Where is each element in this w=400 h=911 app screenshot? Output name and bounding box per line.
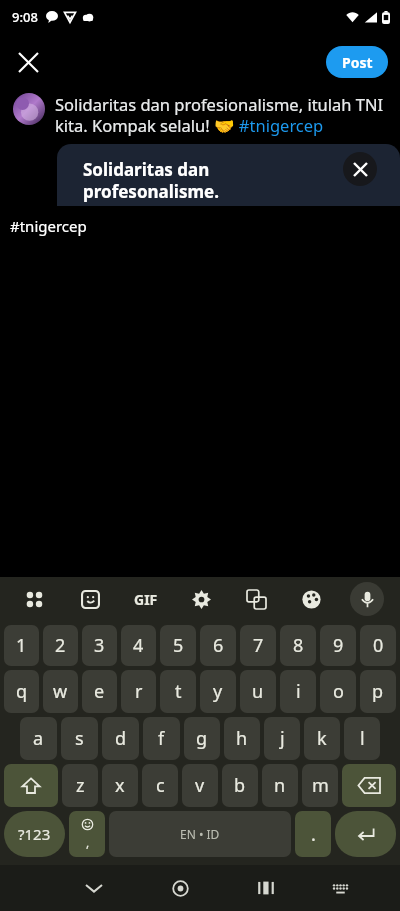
staticText: n — [274, 773, 286, 798]
staticText: Solidaritas dan profesonalisme. — [83, 158, 219, 203]
button[interactable]: v — [182, 764, 218, 807]
button[interactable]: r — [121, 670, 156, 713]
button[interactable]: #tnigercep — [0, 206, 400, 246]
staticText: x — [115, 773, 125, 798]
button[interactable]: y — [200, 670, 236, 713]
button[interactable]: q — [4, 670, 39, 713]
button[interactable]: w — [43, 670, 78, 713]
staticText: u — [252, 679, 264, 704]
button[interactable]: c — [142, 764, 178, 807]
staticText: q — [16, 679, 28, 704]
button[interactable]: Recent apps — [227, 865, 305, 911]
button[interactable]: Close — [8, 42, 48, 82]
staticText: i — [296, 679, 301, 704]
button[interactable]: 1 — [4, 625, 39, 666]
button[interactable]: Switch keyboard — [305, 865, 376, 911]
staticText: h — [236, 726, 248, 751]
button[interactable]: Remove preview — [343, 152, 377, 186]
staticText: #tnigercep — [10, 216, 87, 236]
button[interactable]: k — [304, 717, 340, 760]
staticText: 1 — [16, 633, 27, 658]
button[interactable]: ?123 — [4, 811, 65, 857]
button[interactable]: x — [102, 764, 138, 807]
button[interactable]: 8 — [280, 625, 316, 666]
staticText: c — [156, 773, 165, 798]
staticText: . — [311, 822, 316, 847]
staticText: GIF — [134, 590, 158, 609]
button[interactable]: Shift — [4, 764, 58, 807]
button[interactable]: o — [320, 670, 356, 713]
staticText: 9:08 — [12, 8, 38, 26]
staticText: j — [280, 726, 285, 751]
button[interactable]: Emoji — [69, 811, 105, 857]
button[interactable]: f — [143, 717, 180, 760]
button[interactable]: 0 — [360, 625, 396, 666]
staticText: 8 — [293, 633, 304, 658]
button[interactable]: u — [240, 670, 276, 713]
button[interactable]: Solidaritas dan profesonalisme. — [57, 144, 400, 206]
button[interactable]: GIF — [118, 577, 174, 621]
button[interactable]: j — [264, 717, 300, 760]
button[interactable]: Translate — [229, 577, 284, 621]
button[interactable]: EN • ID — [109, 811, 291, 857]
staticText: 2 — [55, 633, 66, 658]
button[interactable]: Profile picture — [13, 93, 45, 125]
button[interactable]: z — [62, 764, 98, 807]
button[interactable]: h — [224, 717, 260, 760]
button[interactable]: 4 — [121, 625, 156, 666]
staticText: a — [33, 726, 44, 751]
button[interactable]: Enter — [335, 811, 396, 857]
button[interactable]: n — [262, 764, 298, 807]
staticText: EN • ID — [180, 826, 220, 842]
button[interactable]: Settings — [174, 577, 229, 621]
staticText: 5 — [173, 633, 184, 658]
button[interactable]: 7 — [240, 625, 276, 666]
staticText: r — [135, 679, 143, 704]
staticText: 6 — [213, 633, 224, 658]
staticText: 9 — [333, 633, 344, 658]
button[interactable]: . — [295, 811, 331, 857]
button[interactable]: g — [184, 717, 220, 760]
button[interactable]: p — [360, 670, 396, 713]
button[interactable]: m — [302, 764, 338, 807]
button[interactable]: 5 — [160, 625, 196, 666]
staticText: e — [94, 679, 105, 704]
staticText: s — [75, 726, 84, 751]
staticText: 3 — [94, 633, 105, 658]
button[interactable]: i — [280, 670, 316, 713]
button[interactable]: Backspace — [342, 764, 396, 807]
staticText: v — [195, 773, 205, 798]
staticText: d — [115, 726, 127, 751]
staticText: b — [234, 773, 246, 798]
button[interactable]: b — [222, 764, 258, 807]
button[interactable]: Hide keyboard — [55, 865, 133, 911]
button[interactable]: Theme — [284, 577, 339, 621]
staticText: y — [213, 679, 223, 704]
staticText: f — [158, 726, 165, 751]
button[interactable]: Stickers — [62, 577, 118, 621]
button[interactable]: 6 — [200, 625, 236, 666]
staticText: w — [53, 679, 68, 704]
staticText: k — [317, 726, 327, 751]
staticText: 7 — [253, 633, 264, 658]
button[interactable]: 3 — [82, 625, 117, 666]
button[interactable]: d — [102, 717, 139, 760]
staticText: o — [333, 679, 344, 704]
staticText: ?123 — [18, 824, 51, 844]
staticText: 0 — [373, 633, 384, 658]
button[interactable]: l — [344, 717, 380, 760]
button[interactable]: 9 — [320, 625, 356, 666]
button[interactable]: Post — [326, 46, 388, 78]
staticText: m — [312, 773, 329, 798]
button[interactable]: t — [160, 670, 196, 713]
button[interactable]: Apps — [6, 577, 62, 621]
button[interactable]: Voice input — [350, 582, 384, 616]
button[interactable]: s — [61, 717, 98, 760]
staticText: g — [196, 726, 208, 751]
button[interactable]: a — [20, 717, 57, 760]
button[interactable]: 2 — [43, 625, 78, 666]
staticText: l — [360, 726, 365, 751]
staticText: z — [76, 773, 85, 798]
button[interactable]: Home — [133, 865, 227, 911]
button[interactable]: e — [82, 670, 117, 713]
